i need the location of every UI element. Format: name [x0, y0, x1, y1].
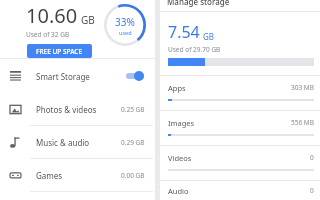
staticText: Manage storage [167, 0, 230, 7]
staticText: GB [203, 31, 215, 42]
staticText: GB [81, 13, 95, 27]
staticText: 0.29 GB [121, 138, 145, 147]
staticText: Music & audio [36, 137, 90, 148]
button[interactable]: Audio [160, 181, 320, 200]
staticText: 7.54 [168, 21, 200, 43]
button[interactable]: Apps [160, 76, 320, 111]
staticText: Photos & videos [36, 104, 97, 115]
button[interactable]: Games [0, 159, 155, 192]
staticText: 0 [310, 153, 314, 162]
staticText: 556 MB [291, 118, 314, 127]
staticText: Videos [168, 153, 192, 163]
staticText: Images [168, 118, 195, 128]
staticText: Smart Storage [36, 71, 90, 82]
staticText: Used of 29.70 GB [168, 45, 221, 54]
staticText: FREE UP SPACE [36, 47, 83, 55]
button[interactable]: Smart Storage [0, 59, 155, 93]
staticText: Games [36, 170, 63, 181]
staticText: 303 MB [291, 83, 314, 92]
staticText: 0 [310, 186, 314, 195]
staticText: 10.60 [26, 2, 78, 29]
button[interactable]: Videos [160, 146, 320, 181]
staticText: Apps [168, 83, 186, 93]
button[interactable]: Images [160, 111, 320, 146]
button[interactable]: Music & audio [0, 126, 155, 159]
staticText: 0.00 GB [121, 171, 145, 180]
button[interactable]: FREE UP SPACE [27, 44, 92, 58]
staticText: 0.25 GB [121, 105, 145, 114]
staticText: used [119, 29, 132, 36]
staticText: Audio [168, 186, 189, 196]
staticText: 33% [115, 15, 135, 29]
staticText: Used of 32 GB [26, 30, 70, 39]
button[interactable]: Photos & videos [0, 93, 155, 126]
